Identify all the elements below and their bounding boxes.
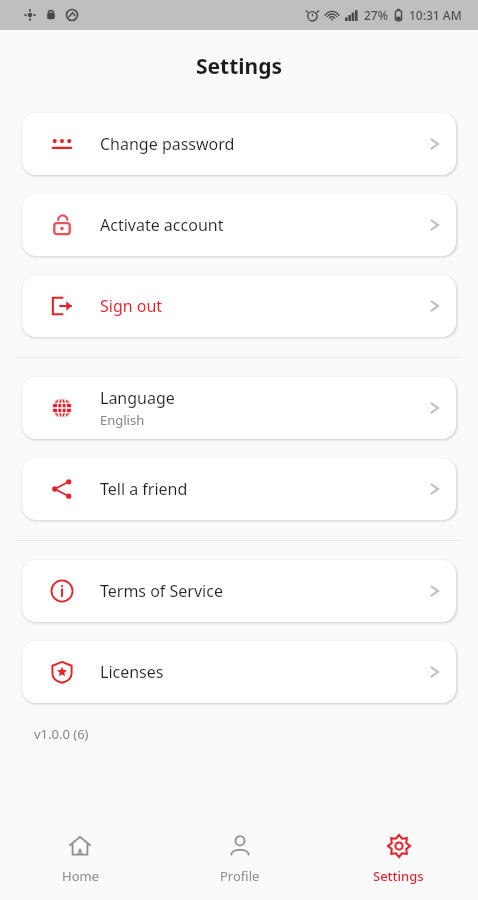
staticText: Tell a friend — [100, 478, 188, 500]
staticText: Profile — [220, 867, 260, 885]
staticText: Settings — [0, 52, 478, 81]
button[interactable]: Settings — [319, 812, 478, 885]
button[interactable]: Change password — [22, 113, 456, 175]
staticText: English — [100, 411, 145, 429]
staticText: Settings — [373, 867, 424, 885]
staticText: Language — [100, 387, 175, 409]
staticText: Licenses — [100, 661, 164, 683]
staticText: 10:31 AM — [409, 7, 462, 23]
staticText: Change password — [100, 133, 235, 155]
button[interactable]: Sign out — [22, 275, 456, 337]
staticText: Sign out — [100, 295, 163, 317]
button[interactable]: Home — [0, 812, 160, 885]
staticText: v1.0.0 (6) — [34, 725, 89, 743]
button[interactable]: Tell a friend — [22, 458, 456, 520]
staticText: Activate account — [100, 214, 224, 236]
staticText: Terms of Service — [100, 580, 223, 602]
button[interactable]: Activate account — [22, 194, 456, 256]
staticText: Home — [62, 867, 99, 885]
button[interactable]: Profile — [160, 812, 319, 885]
button[interactable]: Language — [22, 377, 456, 439]
button[interactable]: Terms of Service — [22, 560, 456, 622]
staticText: 27% — [364, 7, 388, 23]
button[interactable]: Licenses — [22, 641, 456, 703]
